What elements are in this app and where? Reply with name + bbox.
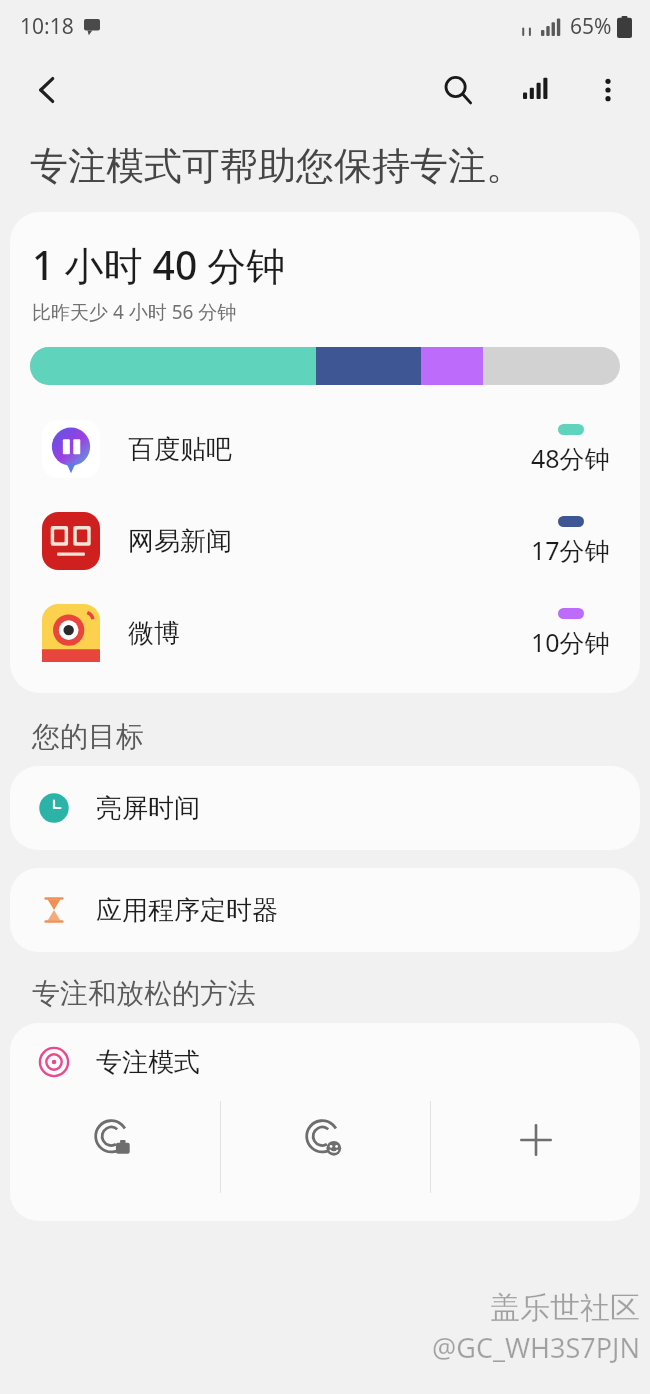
button[interactable]: More options — [580, 62, 636, 118]
staticText: @GC_WH3S7PJN — [431, 1329, 640, 1366]
staticText: 10分钟 — [531, 625, 610, 659]
button[interactable]: 1 小时 40 分钟 — [10, 212, 640, 693]
staticText: 您的目标 — [32, 719, 144, 754]
staticText: 17分钟 — [531, 533, 610, 567]
button[interactable]: 网易新闻 — [10, 495, 640, 587]
staticText: 专注和放松的方法 — [32, 976, 256, 1011]
button[interactable]: Statistics — [508, 62, 564, 118]
button[interactable]: 应用程序定时器 — [10, 868, 640, 952]
staticText: 亮屏时间 — [96, 792, 200, 825]
button[interactable]: 微博 — [10, 587, 640, 679]
staticText: 10:18 — [20, 12, 74, 41]
staticText: 微博 — [128, 617, 531, 650]
button[interactable]: Search — [430, 62, 486, 118]
staticText: 比昨天少 4 小时 56 分钟 — [32, 299, 237, 325]
button[interactable]: 专注模式 — [10, 1023, 640, 1101]
staticText: 应用程序定时器 — [96, 894, 278, 927]
button[interactable]: Me time focus mode — [221, 1101, 430, 1147]
staticText: 1 小时 40 分钟 — [32, 238, 286, 291]
staticText: 盖乐世社区 — [490, 1289, 640, 1327]
button[interactable]: Work time focus mode — [10, 1101, 220, 1147]
button[interactable]: 亮屏时间 — [10, 766, 640, 850]
button[interactable]: 百度贴吧 — [10, 403, 640, 495]
staticText: 网易新闻 — [128, 525, 531, 558]
staticText: 专注模式可帮助您保持专注。 — [30, 142, 524, 190]
staticText: 65% — [570, 12, 612, 41]
button[interactable]: Back — [22, 64, 74, 116]
staticText: 专注模式 — [96, 1046, 200, 1079]
button[interactable]: Add focus mode — [431, 1101, 640, 1147]
staticText: 百度贴吧 — [128, 433, 531, 466]
staticText: 48分钟 — [531, 441, 610, 475]
